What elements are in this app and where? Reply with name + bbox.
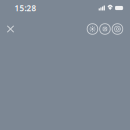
staticText: 15:28 (14, 3, 36, 13)
button[interactable]: Flip camera (99, 23, 111, 35)
button[interactable]: Close (1, 19, 20, 38)
button[interactable]: Effects (86, 23, 99, 35)
button[interactable]: Camera settings (111, 23, 124, 35)
